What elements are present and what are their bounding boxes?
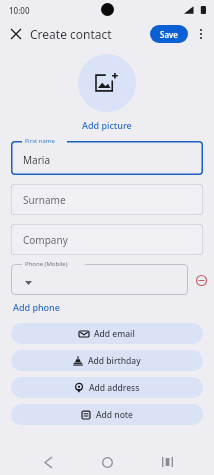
staticText: Maria (23, 153, 50, 167)
button[interactable]: Close (4, 22, 28, 46)
button[interactable]: Add phone (11, 299, 62, 315)
button[interactable]: Remove phone (191, 270, 211, 290)
staticText: Company (23, 233, 68, 247)
button[interactable]: Surname (11, 184, 203, 215)
staticText: Surname (23, 193, 66, 207)
staticText: Add email (94, 328, 135, 340)
button[interactable]: First name (11, 141, 203, 175)
button[interactable]: Save (150, 25, 188, 43)
button[interactable]: Recent apps (155, 450, 179, 474)
staticText: Add birthday (88, 355, 141, 367)
staticText: 10:00 (9, 5, 30, 16)
staticText: Create contact (30, 26, 112, 42)
button[interactable]: Company (11, 224, 203, 255)
button[interactable]: Back (36, 450, 60, 474)
button[interactable]: Add birthday (11, 350, 203, 371)
button[interactable]: Phone (Mobile) (11, 264, 188, 295)
button[interactable]: Add picture (78, 54, 136, 112)
staticText: First name (25, 137, 55, 145)
button[interactable]: Add email (11, 323, 203, 344)
button[interactable]: Add picture (80, 119, 134, 131)
staticText: Add note (96, 409, 133, 421)
staticText: Phone (Mobile) (25, 260, 68, 268)
staticText: Save (160, 29, 178, 40)
button[interactable]: Add note (11, 404, 203, 425)
staticText: Add phone (13, 301, 60, 313)
staticText: Add address (89, 382, 140, 394)
button[interactable]: More options (191, 24, 211, 44)
button[interactable]: Home (95, 450, 119, 474)
button[interactable]: Add address (11, 377, 203, 398)
